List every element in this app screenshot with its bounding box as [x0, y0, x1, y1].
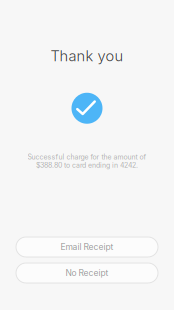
staticText: $388.80 to card ending in 4242.	[36, 161, 138, 169]
button[interactable]: Email Receipt	[16, 237, 158, 257]
staticText: Successful charge for the amount of	[27, 153, 146, 161]
staticText: Thank you	[50, 47, 123, 65]
button[interactable]: No Receipt	[16, 263, 158, 283]
staticText: Email Receipt	[60, 242, 113, 252]
staticText: No Receipt	[65, 268, 108, 278]
